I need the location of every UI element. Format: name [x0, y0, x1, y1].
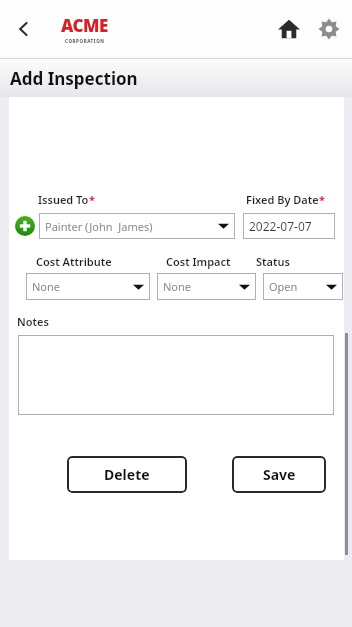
button[interactable]: Open: [263, 273, 343, 300]
button[interactable]: Save: [232, 456, 326, 493]
button[interactable]: Settings: [310, 10, 348, 48]
staticText: CORPORATION: [65, 38, 105, 44]
staticText: None: [32, 279, 61, 294]
button[interactable]: [18, 335, 334, 415]
staticText: Add Inspection: [10, 67, 138, 90]
staticText: ACME: [61, 14, 108, 37]
staticText: Open: [269, 279, 298, 294]
button[interactable]: None: [26, 273, 150, 300]
staticText: *: [89, 192, 95, 207]
button[interactable]: ACME Corporation logo: [61, 14, 108, 44]
button[interactable]: Delete: [67, 456, 187, 493]
staticText: Issued To: [38, 192, 89, 207]
staticText: Cost Impact: [166, 254, 231, 269]
button[interactable]: 2022-07-07: [243, 213, 335, 239]
staticText: 2022-07-07: [249, 218, 312, 234]
staticText: None: [163, 279, 192, 294]
staticText: Cost Attribute: [36, 254, 112, 269]
button[interactable]: None: [157, 273, 256, 300]
button[interactable]: Add: [14, 215, 36, 237]
staticText: *: [319, 192, 325, 207]
staticText: Notes: [17, 314, 49, 329]
staticText: Fixed By Date: [246, 192, 319, 207]
staticText: Delete: [104, 465, 150, 484]
button[interactable]: Home: [270, 10, 308, 48]
staticText: Status: [256, 254, 290, 269]
staticText: Save: [263, 465, 296, 484]
staticText: Painter (John James): [45, 219, 153, 234]
button[interactable]: Painter (John James): [39, 213, 235, 239]
button[interactable]: Back: [6, 11, 42, 47]
